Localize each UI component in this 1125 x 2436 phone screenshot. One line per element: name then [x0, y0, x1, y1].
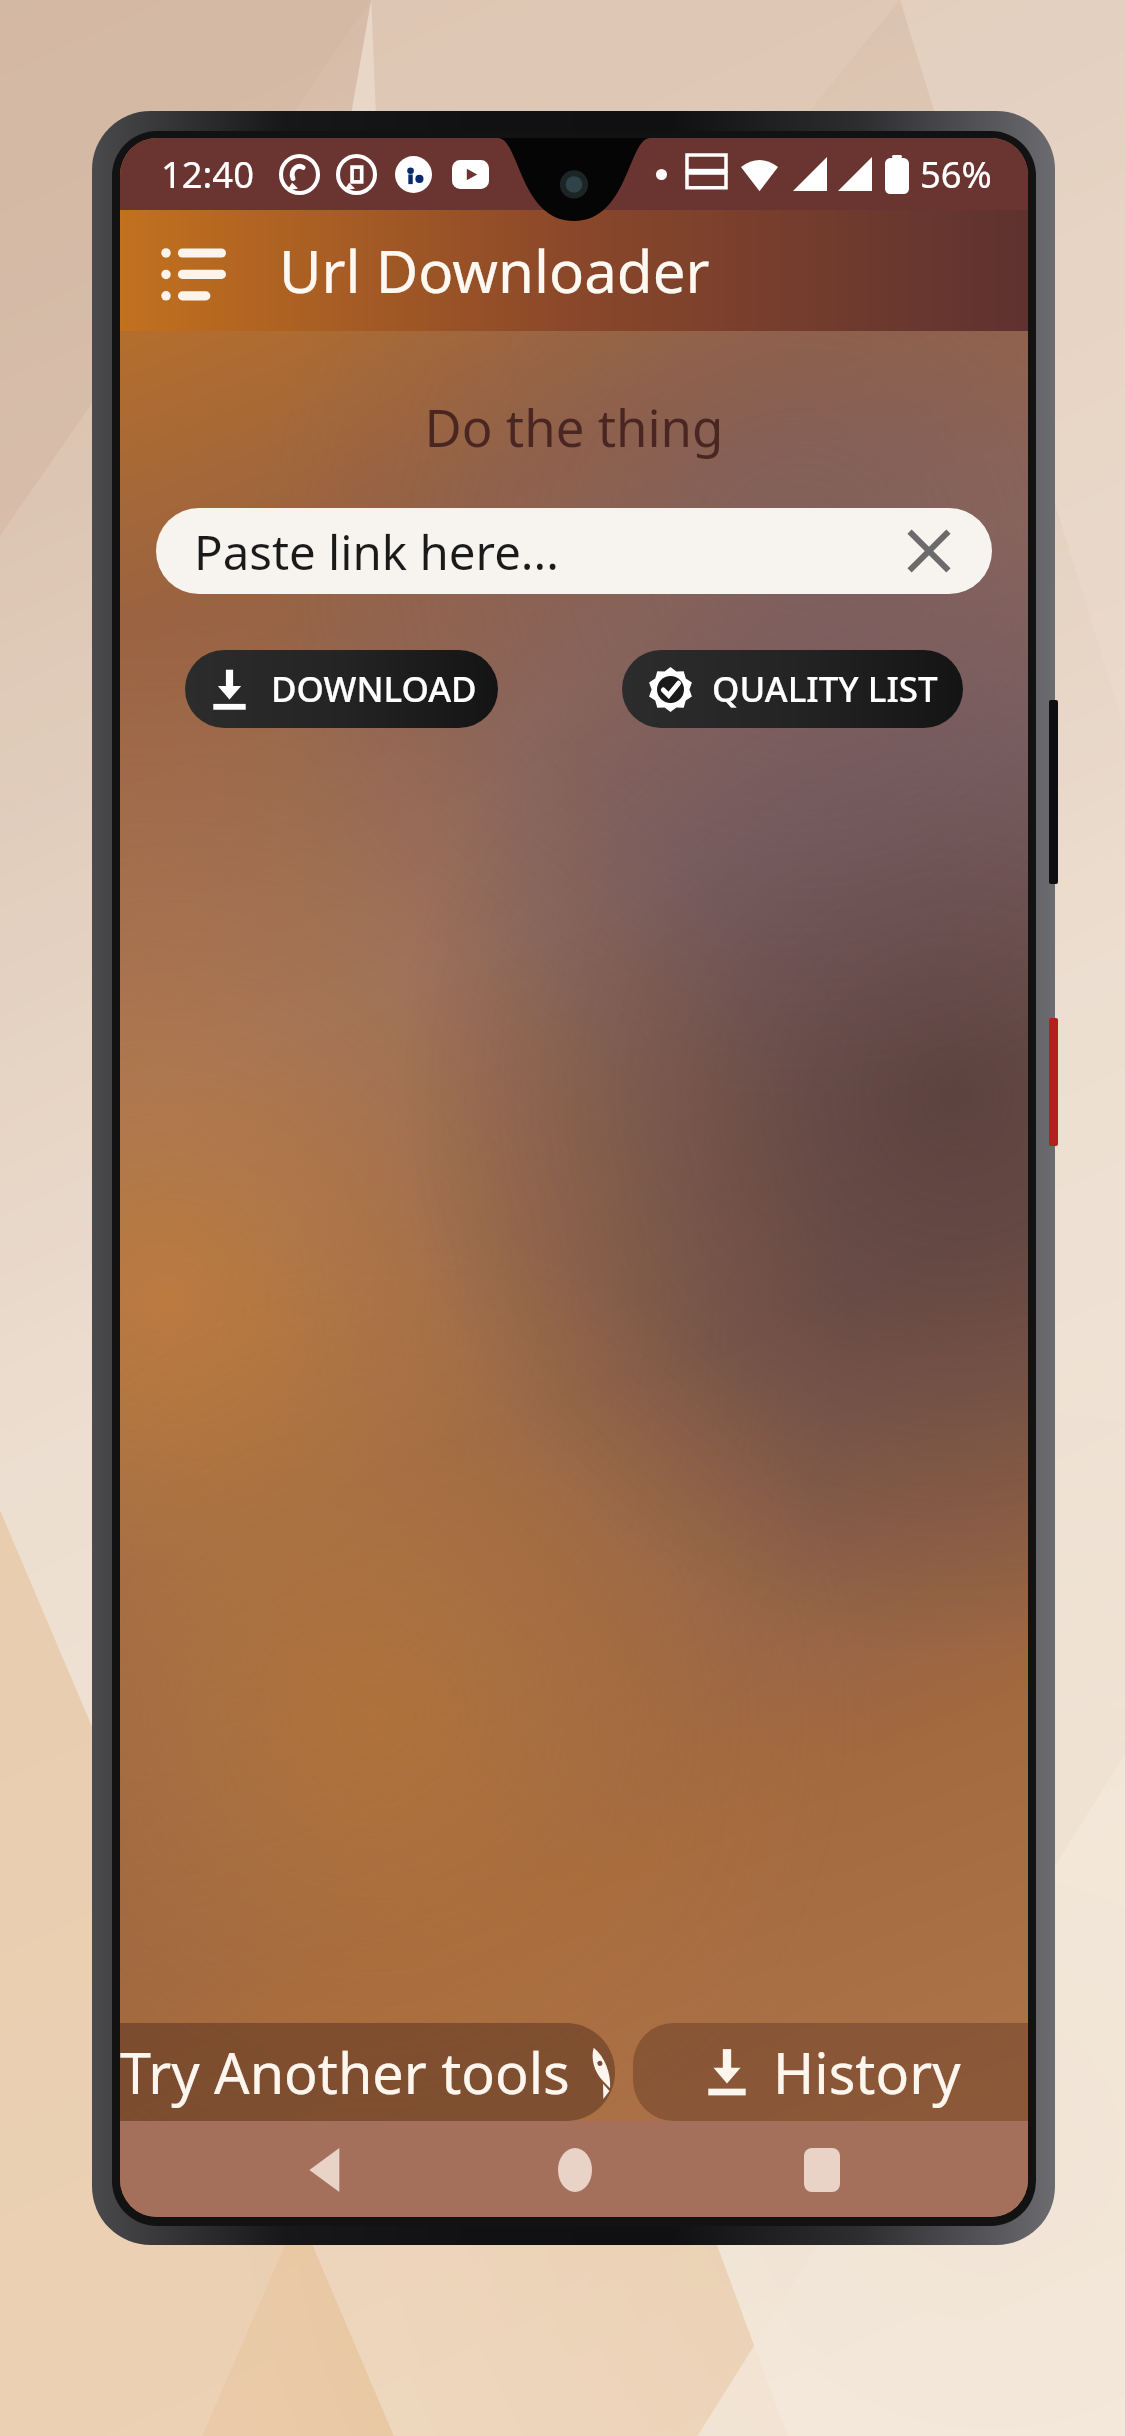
staticText: Try Another tools — [120, 2034, 570, 2110]
staticText: Url Downloader — [279, 231, 710, 310]
staticText: History — [773, 2034, 961, 2110]
staticText: DOWNLOAD — [271, 665, 477, 713]
staticText: Paste link here... — [194, 519, 559, 584]
button[interactable]: DOWNLOAD — [185, 650, 498, 728]
staticText: QUALITY LIST — [712, 665, 938, 713]
button[interactable]: Recents — [780, 2128, 863, 2211]
button[interactable]: Clear — [902, 524, 956, 578]
staticText: 12:40 — [161, 149, 254, 199]
button[interactable]: Back — [285, 2128, 368, 2211]
staticText: Do the thing — [120, 393, 1028, 462]
staticText: 56% — [920, 149, 992, 199]
button[interactable]: Try Another tools — [120, 2023, 615, 2121]
button[interactable]: Paste link here... — [156, 508, 992, 594]
button[interactable]: QUALITY LIST — [622, 650, 963, 728]
button[interactable]: History — [633, 2023, 1028, 2121]
button[interactable]: Menu — [152, 229, 235, 312]
button[interactable]: Home — [533, 2128, 616, 2211]
